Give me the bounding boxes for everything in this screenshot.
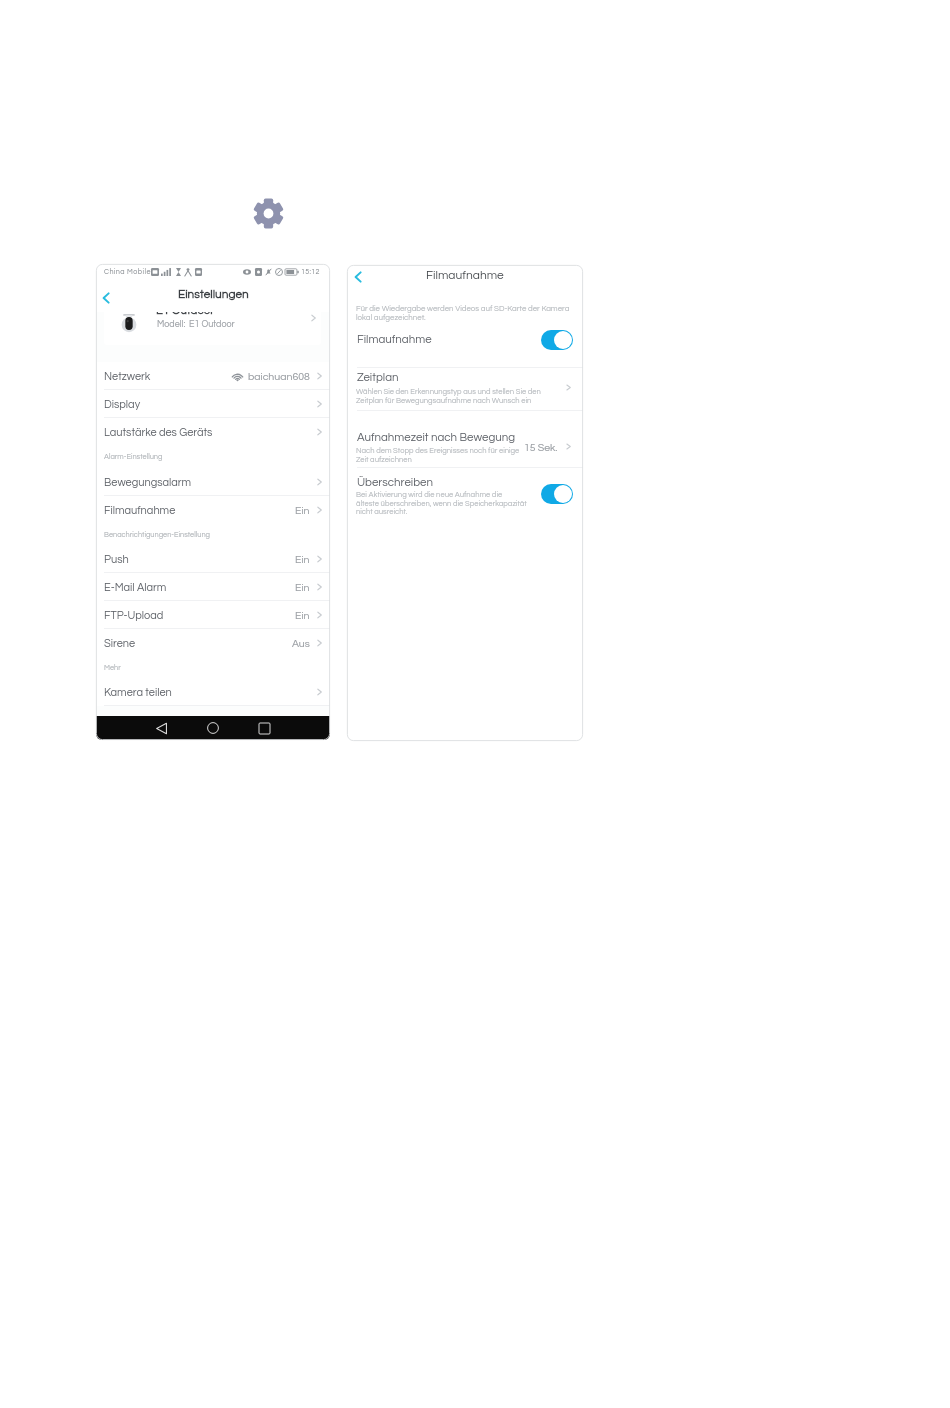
button[interactable]: Netzwerk (96, 362, 330, 390)
staticText: Bewegungsalarm (104, 477, 192, 488)
staticText: Ein (295, 554, 310, 565)
button[interactable]: E-Mail Alarm (96, 573, 330, 601)
staticText: Zeitplan (357, 372, 399, 384)
staticText: Lautstärke des Geräts (104, 427, 213, 438)
staticText: China Mobile (104, 268, 151, 275)
staticText: Mehr (104, 664, 121, 672)
button[interactable]: Back (148, 716, 174, 740)
button[interactable]: E1 Outdoor (104, 294, 321, 345)
staticText: Ein (295, 582, 310, 593)
staticText: Überschreiben (357, 477, 433, 489)
button[interactable]: Überschreiben (347, 476, 583, 518)
staticText: Push (104, 554, 129, 565)
button[interactable]: Display (96, 390, 330, 418)
button[interactable]: Push (96, 545, 330, 573)
staticText: Filmaufnahme (104, 505, 176, 516)
button[interactable]: Back (96, 287, 116, 308)
staticText: Ein (295, 610, 310, 621)
staticText: Aus (292, 638, 310, 649)
staticText: Modell: E1 Outdoor (157, 320, 235, 329)
staticText: Wählen Sie den Erkennungstyp aus und ste… (356, 388, 541, 404)
staticText: Ein (295, 505, 310, 516)
button[interactable]: Kamera teilen (96, 678, 330, 706)
staticText: Sirene (104, 638, 136, 649)
staticText: Alarm-Einstellung (104, 453, 163, 461)
staticText: Filmaufnahme (357, 334, 432, 346)
button[interactable]: Filmaufnahme (96, 496, 330, 524)
staticText: E-Mail Alarm (104, 582, 167, 593)
staticText: Bei Aktivierung wird die neue Aufnahme d… (356, 491, 527, 515)
staticText: E1 Outdoor (156, 305, 215, 317)
staticText: Netzwerk (104, 371, 151, 382)
button[interactable]: Lautstärke des Geräts (96, 418, 330, 446)
staticText: Filmaufnahme (426, 269, 504, 281)
staticText: 15:12 (301, 268, 320, 275)
button[interactable]: Zeitplan (347, 370, 583, 410)
button[interactable]: Back (347, 266, 368, 287)
staticText: 15 Sek. (524, 442, 558, 453)
staticText: Nach dem Stopp des Ereignisses noch für … (356, 447, 520, 463)
button[interactable]: Toggle (541, 330, 573, 350)
staticText: Benachrichtigungen-Einstellung (104, 531, 211, 539)
button[interactable]: Home (200, 716, 226, 740)
button[interactable]: Toggle (541, 484, 573, 504)
button[interactable]: FTP-Upload (96, 601, 330, 629)
button[interactable]: Sirene (96, 629, 330, 657)
button[interactable]: Bewegungsalarm (96, 468, 330, 496)
button[interactable]: Filmaufnahme (347, 327, 583, 352)
button[interactable]: Aufnahmezeit nach Bewegung (347, 430, 583, 466)
staticText: Kamera teilen (104, 687, 172, 698)
staticText: baichuan608 (248, 371, 310, 382)
staticText: Einstellungen (178, 288, 249, 300)
button[interactable]: Recents (251, 716, 277, 740)
staticText: Aufnahmezeit nach Bewegung (357, 432, 516, 444)
staticText: Display (104, 399, 141, 410)
staticText: Für die Wiedergabe werden Videos auf SD-… (356, 305, 570, 322)
staticText: FTP-Upload (104, 610, 164, 621)
